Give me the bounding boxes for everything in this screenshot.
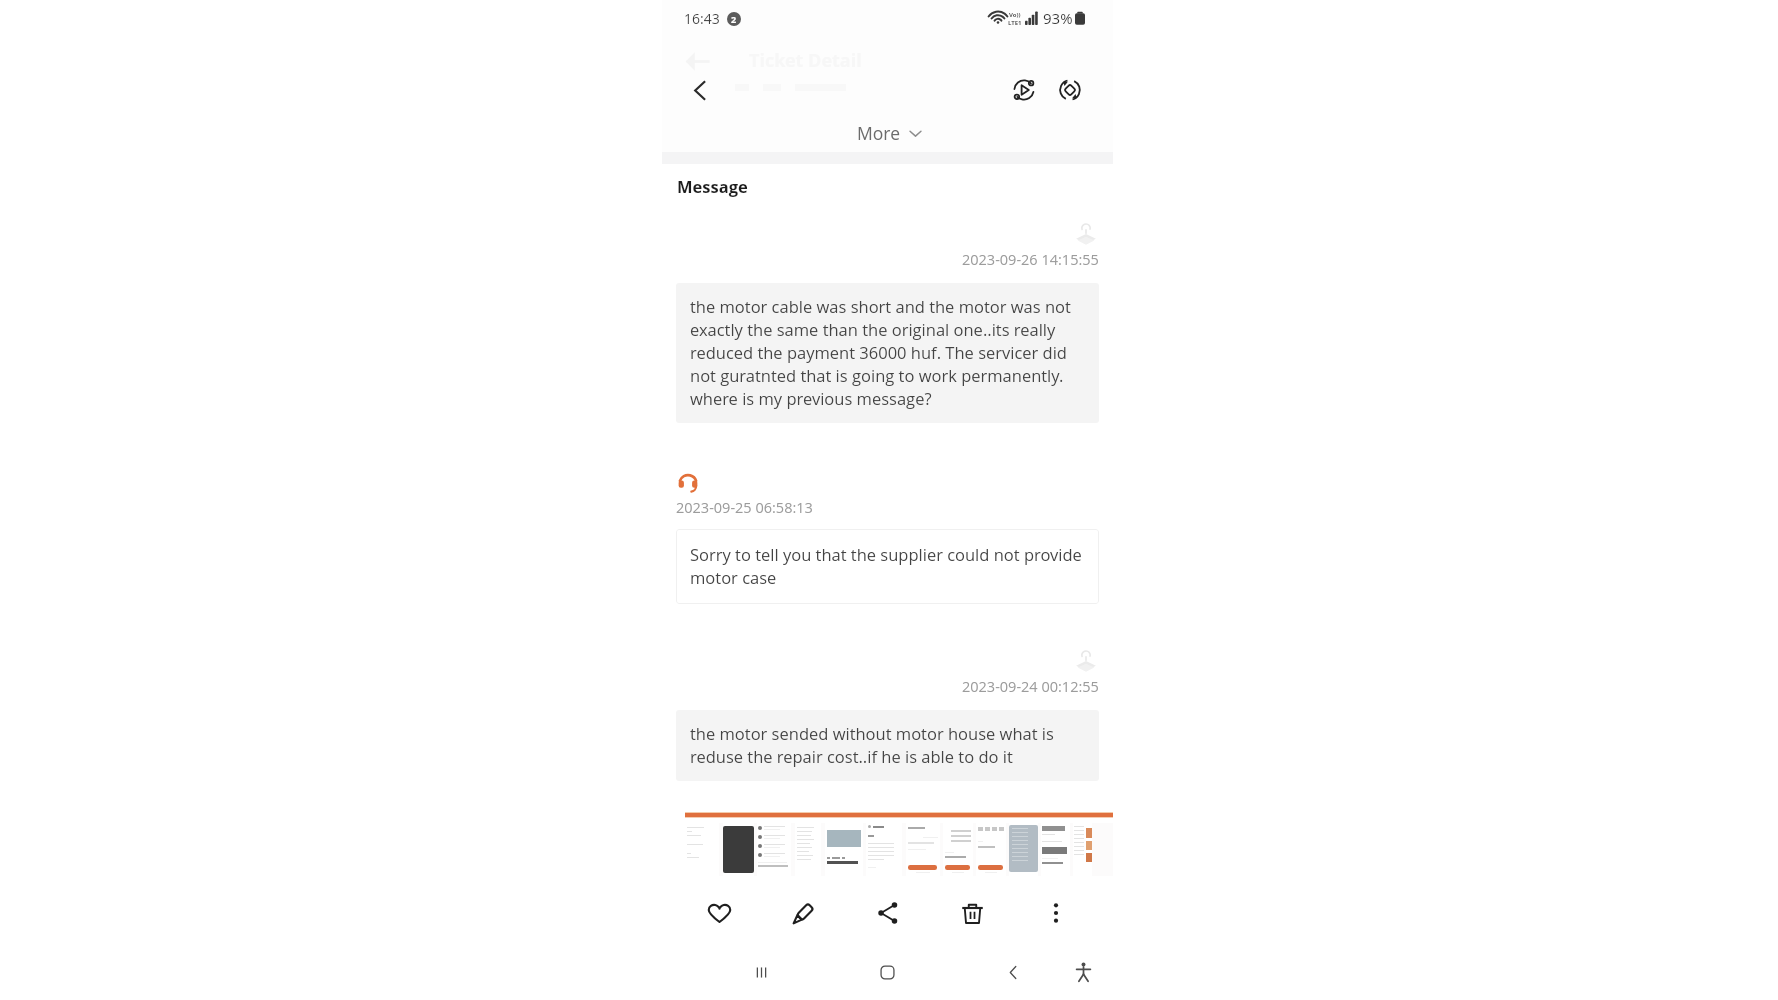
button[interactable]: Captured page preview: [976, 823, 1006, 876]
staticText: Message: [677, 175, 748, 197]
staticText: Vo)): [1009, 11, 1021, 19]
button[interactable]: Captured page preview: [866, 823, 902, 876]
button[interactable]: the motor cable was short and the motor …: [676, 283, 1099, 423]
button[interactable]: Edit: [780, 890, 826, 936]
staticText: 2023-09-25 06:58:13: [676, 498, 813, 518]
staticText: LTE1: [1008, 19, 1022, 26]
button[interactable]: Captured page preview: [685, 823, 719, 876]
button[interactable]: Recents: [738, 949, 784, 995]
staticText: 93%: [1043, 8, 1073, 28]
staticText: 2023-09-24 00:12:55: [962, 677, 1099, 697]
button[interactable]: Delete: [949, 890, 995, 936]
button[interactable]: Captured page preview: [943, 823, 973, 876]
staticText: 16:43: [684, 9, 720, 28]
button[interactable]: More: [843, 115, 936, 151]
button[interactable]: Captured page preview: [723, 823, 754, 876]
staticText: 2023-09-26 14:15:55: [962, 250, 1099, 270]
button[interactable]: Captured page preview: [906, 823, 940, 876]
button[interactable]: the motor sended without motor house wha…: [676, 710, 1099, 781]
button[interactable]: Back: [678, 68, 722, 112]
staticText: the motor sended without motor house wha…: [690, 722, 1085, 768]
button[interactable]: Captured page preview: [757, 823, 791, 876]
button[interactable]: Favourite: [696, 890, 742, 936]
button[interactable]: Record GIF: [1002, 68, 1046, 112]
button[interactable]: Captured page preview: [1041, 823, 1070, 876]
button[interactable]: Captured page preview: [825, 823, 863, 876]
staticText: More: [857, 121, 900, 145]
button[interactable]: More options: [1033, 890, 1079, 936]
button[interactable]: Captured page preview: [795, 823, 821, 876]
staticText: 2: [731, 13, 737, 25]
button[interactable]: Share: [865, 890, 911, 936]
button[interactable]: Captured page preview: [1073, 823, 1092, 876]
button[interactable]: Back: [990, 949, 1036, 995]
button[interactable]: Captured page preview: [1009, 823, 1038, 876]
button[interactable]: Accessibility: [1061, 950, 1105, 994]
button[interactable]: Sorry to tell you that the supplier coul…: [676, 529, 1099, 604]
button[interactable]: Home: [864, 949, 910, 995]
staticText: Sorry to tell you that the supplier coul…: [690, 543, 1085, 589]
button[interactable]: Scroll capture: [1048, 68, 1092, 112]
staticText: the motor cable was short and the motor …: [690, 295, 1085, 410]
